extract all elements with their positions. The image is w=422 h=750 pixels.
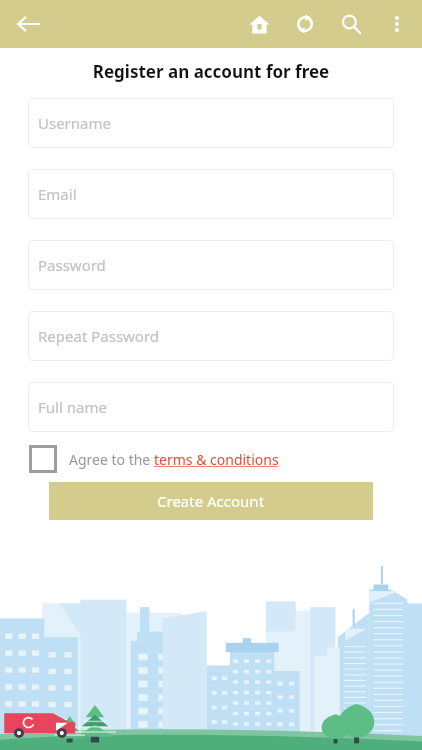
button[interactable]: Agree checkbox xyxy=(29,445,57,473)
button[interactable]: More options xyxy=(374,1,420,47)
staticText: Register an account for free xyxy=(0,60,422,83)
staticText: Email xyxy=(38,184,77,204)
button[interactable]: Username xyxy=(28,98,394,148)
staticText: Create Account xyxy=(157,491,265,511)
staticText: Repeat Password xyxy=(38,326,160,346)
staticText: Username xyxy=(38,113,111,133)
button[interactable]: Refresh xyxy=(282,1,328,47)
staticText: Password xyxy=(38,255,106,275)
button[interactable]: Password xyxy=(28,240,394,290)
staticText: Full name xyxy=(38,397,107,417)
button[interactable]: Create Account xyxy=(49,482,373,520)
button[interactable]: Repeat Password xyxy=(28,311,394,361)
staticText: terms & conditions xyxy=(154,450,279,469)
button[interactable]: terms & conditions xyxy=(154,450,279,469)
button[interactable]: Full name xyxy=(28,382,394,432)
staticText: Agree to the xyxy=(69,450,154,469)
button[interactable]: Home xyxy=(236,1,282,47)
button[interactable]: Back xyxy=(4,0,52,48)
button[interactable]: Search xyxy=(328,1,374,47)
button[interactable]: Email xyxy=(28,169,394,219)
